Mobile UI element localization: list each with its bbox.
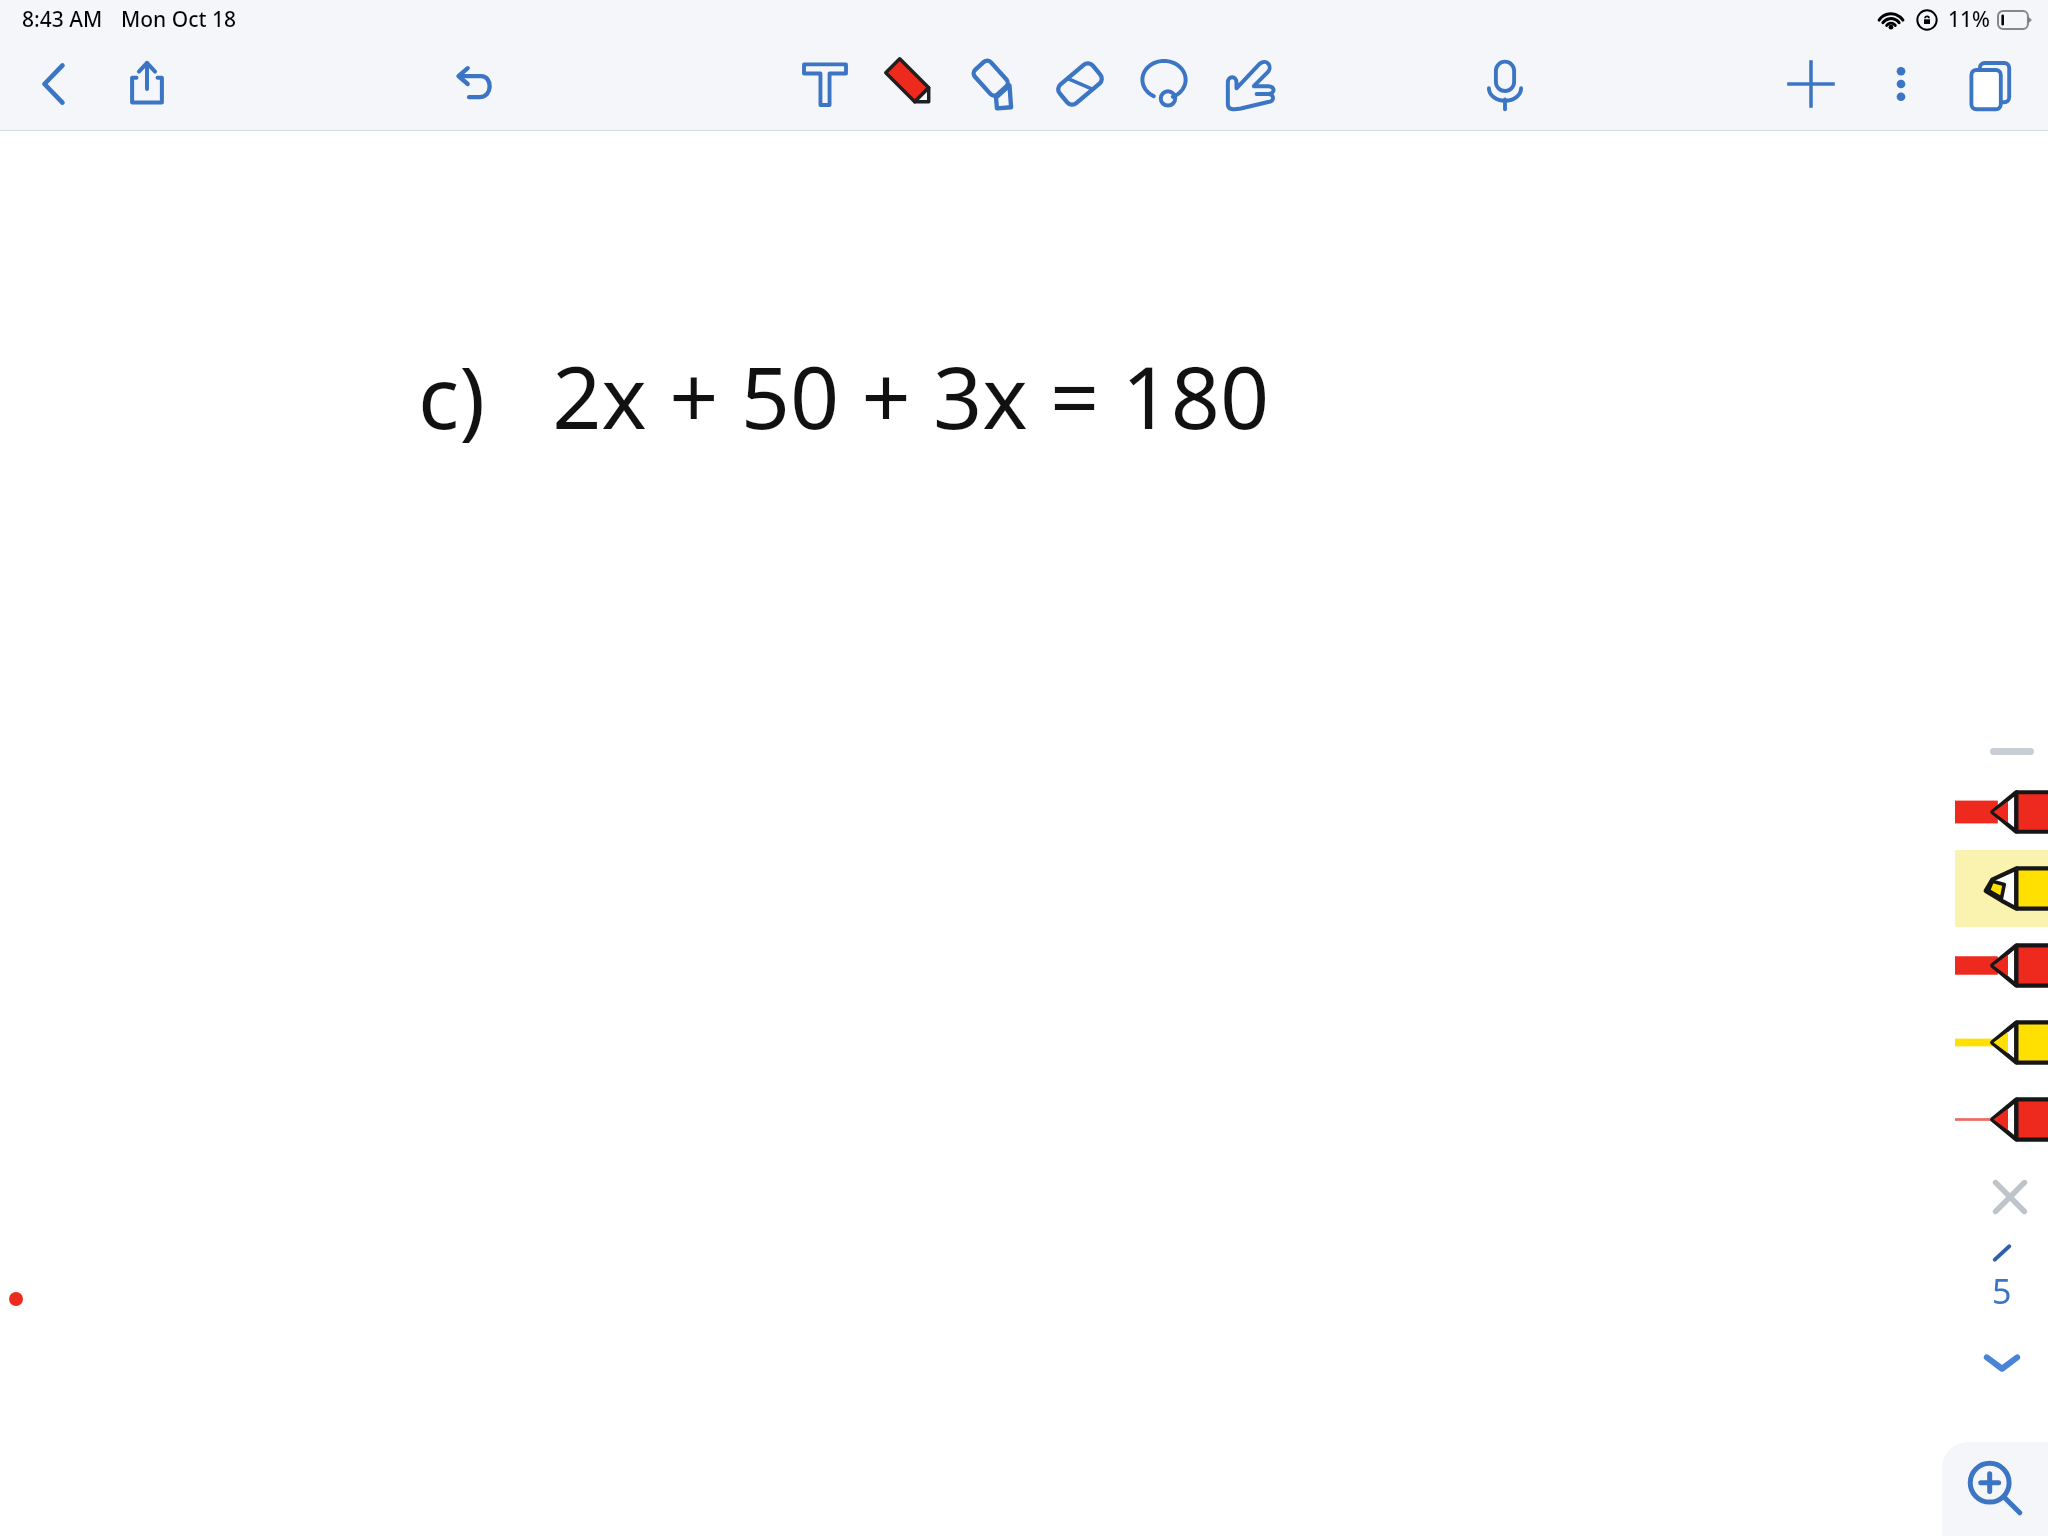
button[interactable]: Record audio — [1470, 49, 1540, 119]
staticText: c) 2x + 50 + 3x = 180 — [418, 337, 1270, 454]
staticText: Mon Oct 18 — [121, 5, 237, 34]
button[interactable]: Close pen palette — [1955, 1158, 2048, 1236]
button[interactable]: Hand tool — [1212, 48, 1284, 120]
button[interactable]: Collapse pen panel — [1973, 1340, 2031, 1384]
button[interactable]: Pen tool — [873, 46, 949, 122]
button[interactable]: Share — [116, 53, 178, 115]
button[interactable]: Highlighter — [960, 48, 1032, 120]
button[interactable]: Text tool — [790, 49, 860, 119]
staticText: 5 — [1992, 1268, 2012, 1314]
button[interactable]: Lasso — [1128, 48, 1200, 120]
button[interactable]: Zoom in — [1942, 1442, 2048, 1536]
button[interactable]: Pages — [1956, 49, 2026, 119]
button[interactable]: Eraser — [1044, 48, 1116, 120]
button[interactable]: Back — [24, 53, 86, 115]
button[interactable]: Pen — [1955, 774, 2048, 850]
button[interactable]: Undo — [440, 51, 506, 117]
button[interactable]: Pen — [1955, 1081, 2048, 1158]
button[interactable]: More options — [1872, 55, 1930, 113]
button[interactable]: Pen — [1955, 1004, 2048, 1081]
button[interactable]: Add — [1776, 49, 1846, 119]
staticText: 8:43 AM — [22, 5, 103, 34]
staticText: 11% — [1948, 5, 1990, 34]
button[interactable]: Pen — [1955, 927, 2048, 1004]
button[interactable]: Pen — [1955, 850, 2048, 927]
